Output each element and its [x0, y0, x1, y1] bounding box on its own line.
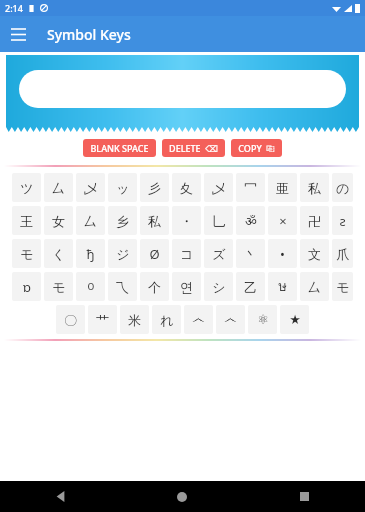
staticText: 乚	[212, 213, 225, 229]
staticText: COPY ⎘	[238, 139, 275, 157]
button[interactable]: 文	[300, 239, 329, 268]
button[interactable]: ђ	[76, 239, 105, 268]
button[interactable]: れ	[152, 305, 181, 334]
button[interactable]: 乙	[236, 272, 265, 301]
staticText: コ	[180, 246, 194, 262]
staticText: 艹	[96, 312, 109, 328]
button[interactable]: •	[268, 239, 297, 268]
button[interactable]: Open navigation menu	[0, 16, 36, 52]
button[interactable]: ッ	[108, 173, 137, 202]
staticText: 王	[20, 213, 33, 229]
button[interactable]: 爪	[332, 239, 353, 268]
button[interactable]: COPY ⎘	[231, 139, 282, 157]
button[interactable]: 米	[120, 305, 149, 334]
staticText: 厶	[52, 180, 65, 196]
button[interactable]: モ	[44, 272, 73, 301]
staticText: ズ	[212, 246, 226, 262]
button[interactable]: モ	[12, 239, 41, 268]
staticText: 乄	[212, 180, 225, 196]
button[interactable]: 乁	[108, 272, 137, 301]
button[interactable]: 个	[140, 272, 169, 301]
button[interactable]: Recent apps	[243, 481, 365, 512]
button[interactable]: Back	[0, 481, 121, 512]
staticText: 文	[308, 246, 321, 262]
button[interactable]: ษ	[268, 272, 297, 301]
staticText: DELETE ⌫	[169, 142, 218, 154]
staticText: 厶	[308, 279, 321, 295]
staticText: シ	[212, 279, 226, 295]
staticText: 爪	[336, 246, 349, 262]
button[interactable]: シ	[204, 272, 233, 301]
button[interactable]	[19, 70, 346, 108]
button[interactable]: ൦	[76, 272, 105, 301]
staticText: ×	[279, 212, 287, 230]
button[interactable]: 厶	[300, 272, 329, 301]
button[interactable]: 厶	[76, 206, 105, 235]
button[interactable]: 丶	[236, 239, 265, 268]
button[interactable]: 乡	[108, 206, 137, 235]
staticText: 彡	[148, 180, 161, 196]
button[interactable]: の	[332, 173, 353, 202]
staticText: 연	[180, 279, 193, 295]
staticText: Symbol Keys	[47, 25, 131, 44]
button[interactable]: ジ	[108, 239, 137, 268]
staticText: ॐ	[245, 212, 257, 230]
button[interactable]: 私	[300, 173, 329, 202]
button[interactable]: ツ	[12, 173, 41, 202]
button[interactable]: 女	[44, 206, 73, 235]
button[interactable]: 〇	[56, 305, 85, 334]
staticText: 冖	[244, 180, 257, 196]
staticText: ★	[289, 312, 301, 327]
button[interactable]: 亜	[268, 173, 297, 202]
button[interactable]: ・	[172, 206, 201, 235]
button[interactable]: 私	[140, 206, 169, 235]
button[interactable]: ෴	[184, 305, 213, 334]
staticText: ษ	[278, 276, 287, 297]
staticText: 〇	[64, 312, 77, 328]
staticText: 乙	[244, 279, 257, 295]
button[interactable]: Home	[121, 481, 243, 512]
staticText: モ	[52, 279, 66, 295]
button[interactable]: 王	[12, 206, 41, 235]
staticText: れ	[160, 312, 174, 328]
staticText: Ø	[149, 245, 160, 263]
button[interactable]: 彡	[140, 173, 169, 202]
button[interactable]: BLANK SPACE	[83, 139, 156, 157]
staticText: ツ	[20, 180, 34, 196]
button[interactable]: ⚛	[248, 305, 277, 334]
staticText: ッ	[116, 180, 130, 196]
button[interactable]: 乄	[76, 173, 105, 202]
button[interactable]: DELETE ⌫	[162, 139, 225, 157]
button[interactable]: 연	[172, 272, 201, 301]
staticText: ⚛	[257, 312, 269, 327]
staticText: 夊	[180, 180, 193, 196]
staticText: 亜	[276, 180, 289, 196]
staticText: ђ	[86, 245, 95, 263]
staticText: 私	[308, 180, 321, 196]
staticText: 乄	[84, 180, 97, 196]
button[interactable]: く	[44, 239, 73, 268]
button[interactable]: コ	[172, 239, 201, 268]
staticText: ꙅ	[339, 212, 346, 230]
button[interactable]: ෴	[216, 305, 245, 334]
button[interactable]: 卍	[300, 206, 329, 235]
button[interactable]: 厶	[44, 173, 73, 202]
button[interactable]: ꙅ	[332, 206, 353, 235]
staticText: 私	[148, 213, 161, 229]
button[interactable]: 夊	[172, 173, 201, 202]
staticText: ・	[180, 213, 193, 229]
button[interactable]: ズ	[204, 239, 233, 268]
button[interactable]: 乄	[204, 173, 233, 202]
button[interactable]: 艹	[88, 305, 117, 334]
button[interactable]: モ	[332, 272, 353, 301]
button[interactable]: Ø	[140, 239, 169, 268]
button[interactable]: 冖	[236, 173, 265, 202]
staticText: モ	[336, 279, 350, 295]
button[interactable]: ॐ	[236, 206, 265, 235]
staticText: 乁	[116, 279, 129, 295]
button[interactable]: ×	[268, 206, 297, 235]
staticText: 米	[128, 312, 141, 328]
button[interactable]: ɒ	[12, 272, 41, 301]
button[interactable]: ★	[280, 305, 309, 334]
button[interactable]: 乚	[204, 206, 233, 235]
